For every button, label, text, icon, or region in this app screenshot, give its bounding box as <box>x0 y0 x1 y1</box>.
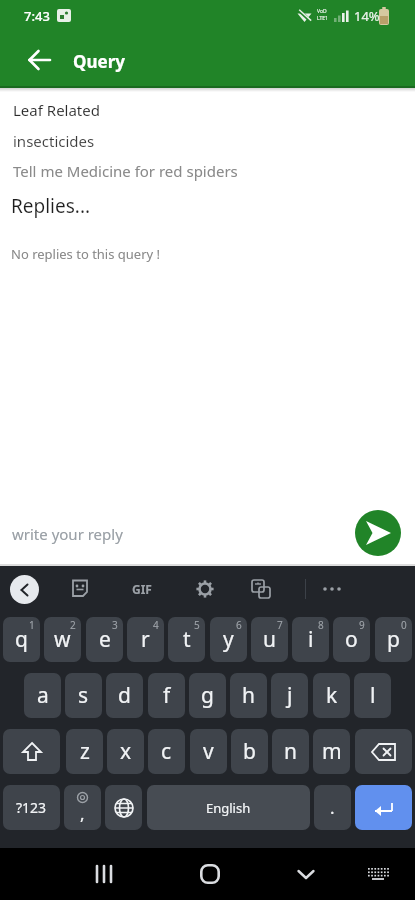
staticText: c <box>161 737 172 766</box>
staticText: No replies to this query ! <box>11 245 161 263</box>
button[interactable]: . <box>314 785 351 830</box>
button[interactable] <box>28 48 52 72</box>
staticText: 6 <box>236 618 242 632</box>
staticText: r <box>141 625 150 654</box>
button[interactable]: , <box>64 785 101 830</box>
staticText: 7 <box>277 618 283 632</box>
button[interactable] <box>86 856 122 892</box>
button[interactable] <box>318 576 346 602</box>
button[interactable] <box>355 729 412 774</box>
button[interactable]: r <box>127 617 164 662</box>
staticText: 7:43 <box>24 7 50 25</box>
staticText: VoD <box>317 8 327 15</box>
button[interactable]: o <box>333 617 370 662</box>
button[interactable]: j <box>271 673 308 718</box>
button[interactable]: a <box>24 673 61 718</box>
staticText: m <box>322 737 342 766</box>
button[interactable]: h <box>230 673 267 718</box>
button[interactable]: v <box>190 729 227 774</box>
button[interactable]: g <box>189 673 226 718</box>
button[interactable]: English <box>147 785 310 830</box>
button[interactable]: x <box>107 729 144 774</box>
staticText: ?123 <box>16 798 47 817</box>
button[interactable] <box>10 575 39 604</box>
staticText: d <box>118 681 131 710</box>
staticText: 3 <box>112 618 118 632</box>
button[interactable]: n <box>272 729 309 774</box>
button[interactable] <box>105 785 142 830</box>
staticText: Leaf Related <box>13 100 100 120</box>
button[interactable] <box>248 576 274 602</box>
staticText: p <box>387 625 400 654</box>
button[interactable] <box>67 576 93 602</box>
button[interactable]: GIF <box>126 576 158 602</box>
button[interactable]: m <box>313 729 350 774</box>
staticText: f <box>163 681 171 710</box>
button[interactable]: e <box>86 617 123 662</box>
staticText: k <box>326 681 338 710</box>
staticText: a <box>37 681 49 710</box>
button[interactable]: c <box>148 729 185 774</box>
button[interactable]: s <box>65 673 102 718</box>
staticText: English <box>206 799 251 817</box>
button[interactable]: p <box>375 617 412 662</box>
staticText: 1 <box>29 618 35 632</box>
button[interactable] <box>355 785 412 830</box>
staticText: insecticides <box>13 131 95 151</box>
staticText: i <box>308 625 314 654</box>
button[interactable]: u <box>251 617 288 662</box>
staticText: n <box>284 737 297 766</box>
button[interactable]: write your reply <box>0 505 415 566</box>
button[interactable]: ?123 <box>3 785 60 830</box>
button[interactable]: l <box>354 673 391 718</box>
button[interactable]: w <box>44 617 81 662</box>
staticText: q <box>15 625 28 654</box>
staticText: 4 <box>153 618 159 632</box>
staticText: z <box>80 737 90 766</box>
button[interactable] <box>362 858 394 890</box>
button[interactable]: k <box>313 673 350 718</box>
button[interactable] <box>3 729 60 774</box>
staticText: Tell me Medicine for red spiders <box>13 161 238 181</box>
staticText: s <box>78 681 89 710</box>
button[interactable] <box>192 576 218 602</box>
staticText: h <box>242 681 255 710</box>
staticText: w <box>54 625 71 654</box>
staticText: o <box>345 625 358 654</box>
staticText: t <box>183 625 191 654</box>
staticText: 0 <box>401 618 407 632</box>
button[interactable] <box>192 856 228 892</box>
button[interactable]: q <box>3 617 40 662</box>
staticText: write your reply <box>12 524 123 544</box>
staticText: . <box>330 796 335 819</box>
button[interactable]: y <box>210 617 247 662</box>
button[interactable] <box>355 510 401 556</box>
button[interactable]: t <box>168 617 205 662</box>
staticText: Replies... <box>11 193 91 219</box>
staticText: GIF <box>132 581 152 597</box>
staticText: Query <box>73 50 125 73</box>
staticText: v <box>203 737 214 766</box>
staticText: 5 <box>194 618 200 632</box>
staticText: l <box>370 681 376 710</box>
staticText: 9 <box>359 618 365 632</box>
staticText: j <box>287 681 293 710</box>
staticText: e <box>99 625 111 654</box>
staticText: y <box>223 625 234 654</box>
staticText: LTE1 <box>317 15 328 22</box>
button[interactable]: f <box>148 673 185 718</box>
button[interactable] <box>288 856 324 892</box>
button[interactable]: b <box>231 729 268 774</box>
staticText: 2 <box>70 618 76 632</box>
staticText: , <box>80 802 85 825</box>
button[interactable]: z <box>66 729 103 774</box>
staticText: b <box>243 737 256 766</box>
button[interactable]: i <box>292 617 329 662</box>
staticText: 14% <box>354 7 380 25</box>
staticText: g <box>201 681 214 710</box>
button[interactable]: d <box>106 673 143 718</box>
staticText: 8 <box>318 618 324 632</box>
staticText: u <box>263 625 276 654</box>
staticText: x <box>120 737 132 766</box>
